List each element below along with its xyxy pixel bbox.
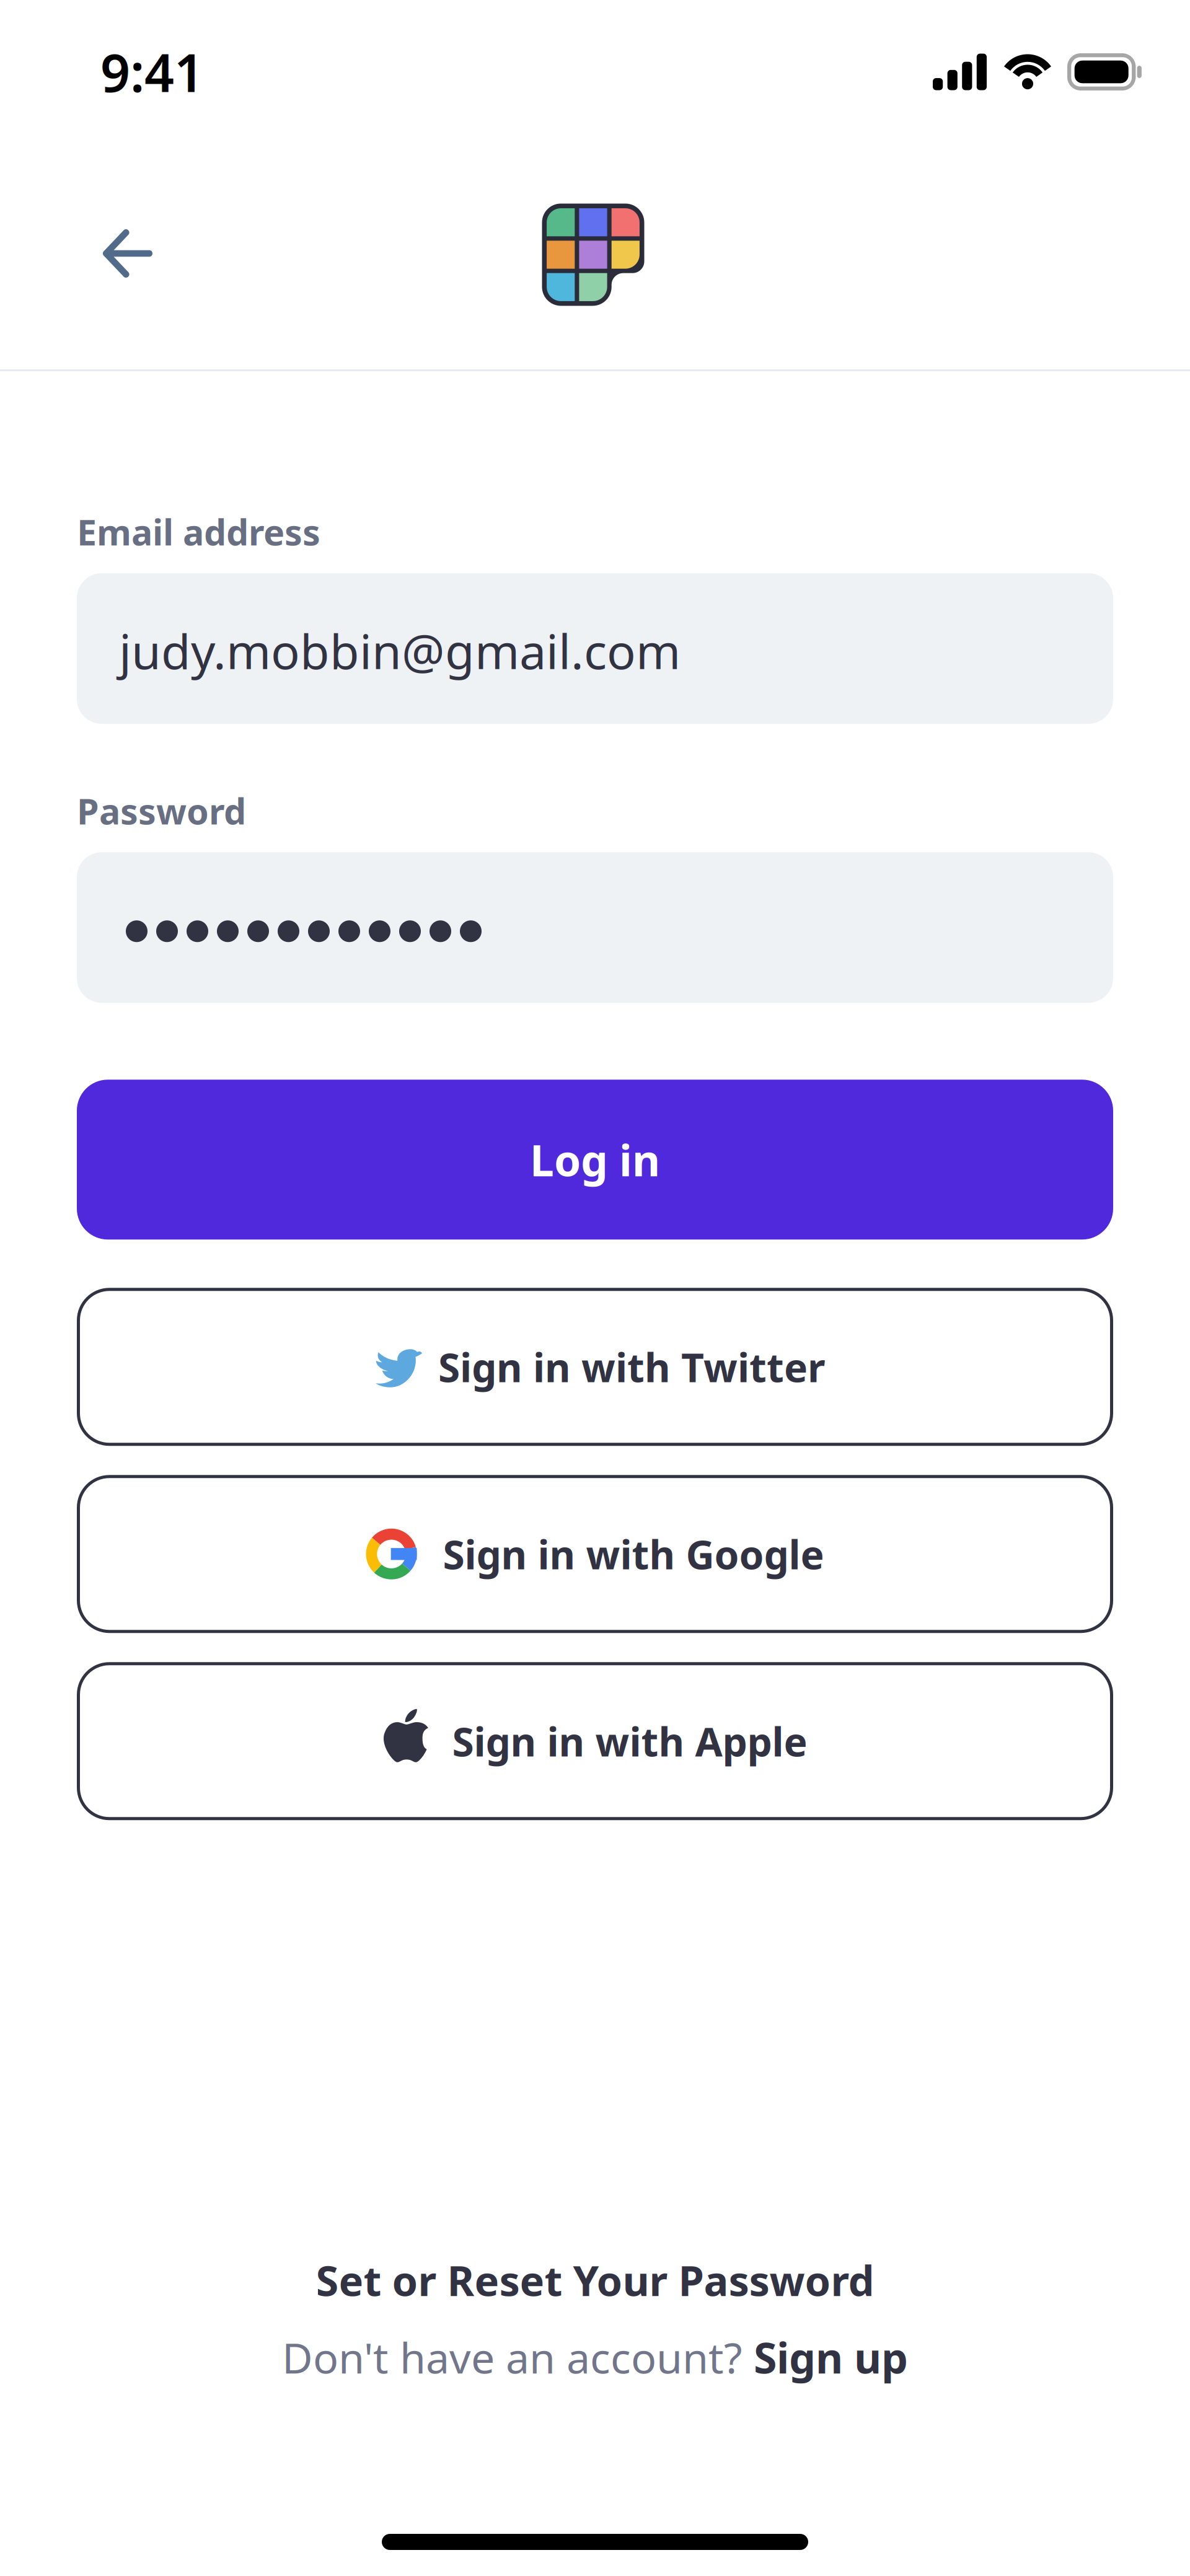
staticText: Sign in with Apple bbox=[452, 1715, 807, 1768]
button[interactable]: Back bbox=[78, 199, 181, 314]
staticText: Password bbox=[77, 787, 246, 834]
staticText: 9:41 bbox=[100, 37, 204, 106]
staticText: Don't have an account? bbox=[282, 2329, 754, 2385]
staticText: Sign in with Twitter bbox=[438, 1341, 826, 1393]
button[interactable]: Sign in with Google bbox=[77, 1475, 1113, 1633]
staticText: Set or Reset Your Password bbox=[316, 2253, 874, 2307]
staticText: Email address bbox=[77, 508, 320, 555]
staticText: Sign in with Google bbox=[443, 1528, 824, 1580]
button[interactable]: Sign in with Apple bbox=[77, 1662, 1113, 1820]
button[interactable]: Don't have an account? bbox=[282, 2329, 908, 2385]
staticText: Log in bbox=[530, 1131, 660, 1188]
button[interactable]: Set or Reset Your Password bbox=[316, 2253, 874, 2307]
staticText: Sign up bbox=[754, 2329, 908, 2385]
staticText: judy.mobbin@gmail.com bbox=[119, 619, 681, 682]
button[interactable]: Sign in with Twitter bbox=[77, 1288, 1113, 1446]
button[interactable]: Log in bbox=[77, 1080, 1113, 1240]
